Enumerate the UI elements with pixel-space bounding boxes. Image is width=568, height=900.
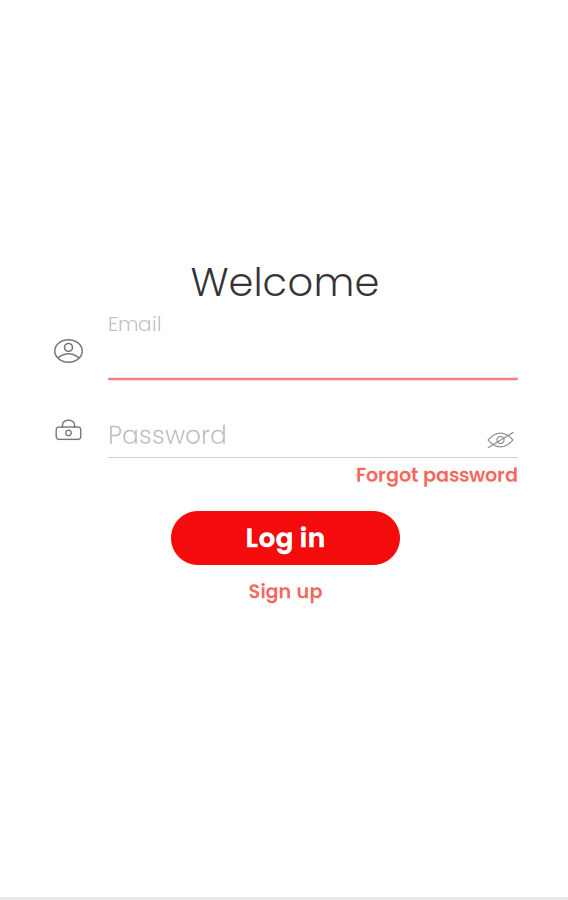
button[interactable]: Sign up [225,577,345,605]
button[interactable]: Email [24,308,518,386]
button[interactable]: Show password [478,423,522,457]
button[interactable]: Password [24,392,518,470]
staticText: Sign up [248,578,322,605]
staticText: Log in [245,519,325,557]
staticText: Email [108,310,162,338]
button[interactable]: Forgot password [348,462,518,488]
button[interactable]: Log in [171,511,400,565]
staticText: Password [108,418,227,452]
staticText: Forgot password [356,462,518,488]
staticText: Welcome [190,254,379,310]
